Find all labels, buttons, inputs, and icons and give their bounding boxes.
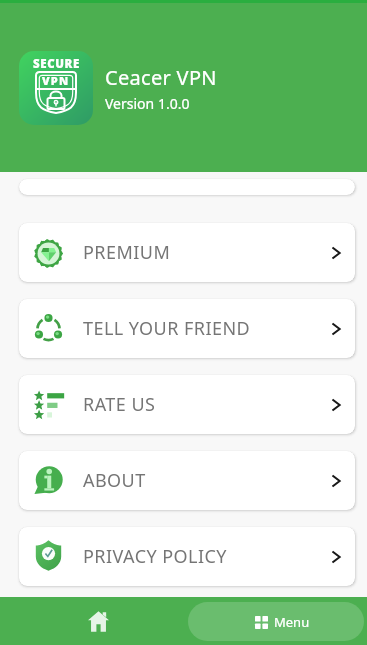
staticText: SECURE [33,56,80,72]
button[interactable]: Menu [188,602,364,641]
button[interactable]: PRIVACY POLICY [19,527,355,586]
staticText: Ceacer VPN [105,64,217,91]
staticText: Version 1.0.0 [105,94,190,113]
button[interactable]: RATE US [19,375,355,434]
staticText: Menu [274,613,310,631]
staticText: PRIVACY POLICY [83,544,227,569]
button[interactable]: TELL YOUR FRIEND [19,299,355,358]
button[interactable]: ABOUT [19,451,355,510]
button[interactable]: Home [0,597,188,645]
staticText: PREMIUM [83,240,171,265]
staticText: ABOUT [83,468,146,493]
button[interactable]: PREMIUM [19,223,355,282]
staticText: VPN [42,73,70,88]
staticText: RATE US [83,392,156,417]
staticText: TELL YOUR FRIEND [83,316,251,341]
